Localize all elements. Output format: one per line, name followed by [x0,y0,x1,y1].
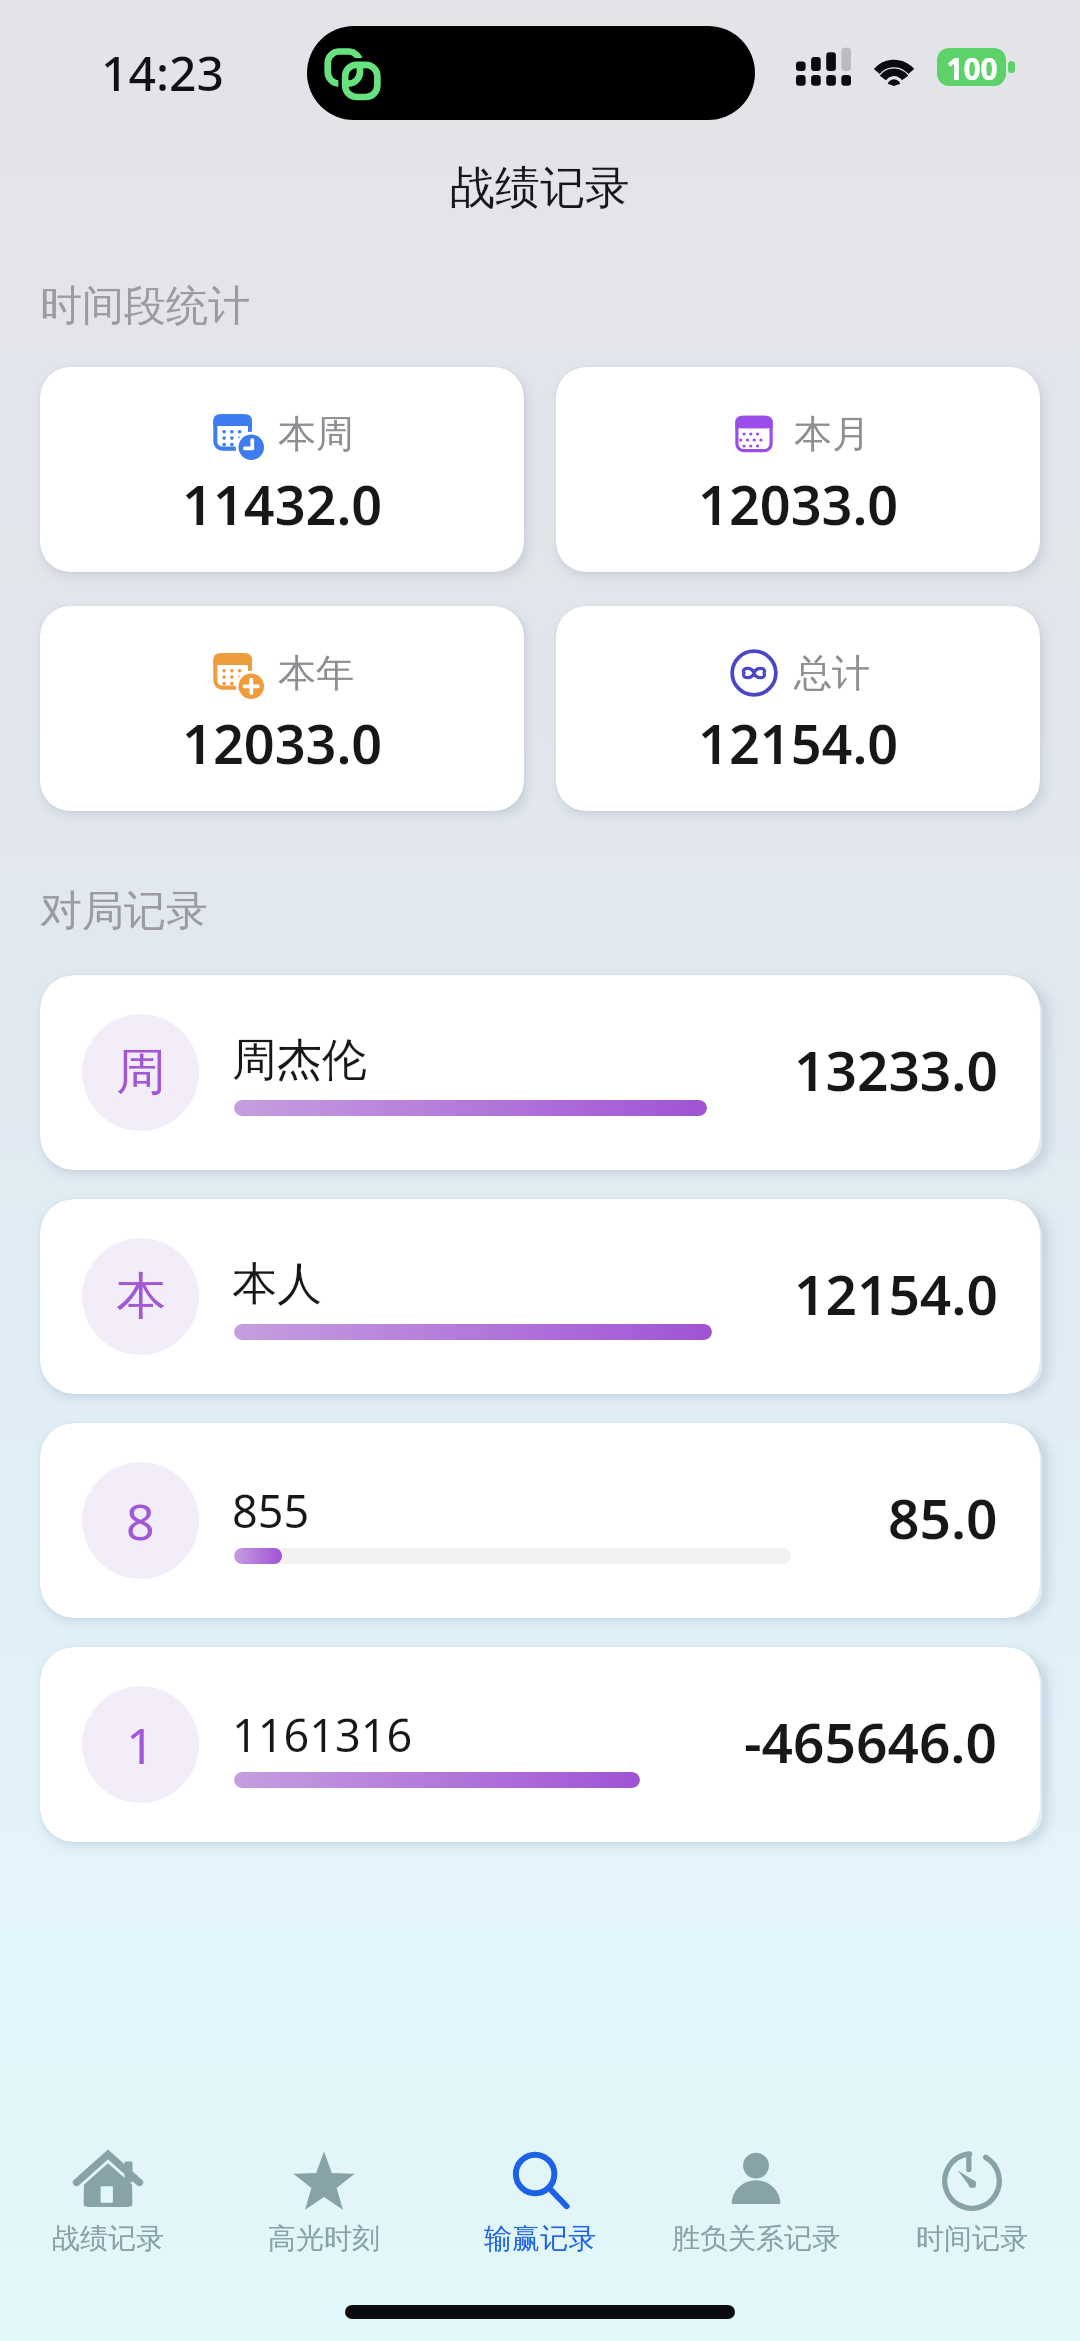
staticText: 12154.0 [794,1256,998,1331]
staticText: 12154.0 [698,706,899,780]
staticText: 高光时刻 [268,2221,380,2256]
staticText: 855 [232,1480,310,1541]
button[interactable]: 胜负关系记录 [648,2146,864,2256]
button[interactable]: 输赢记录 [432,2146,648,2256]
staticText: 8 [126,1487,155,1555]
staticText: 时间段统计 [40,280,250,333]
button[interactable]: 战绩记录 [0,2146,216,2256]
staticText: 1 [126,1711,155,1779]
button[interactable]: 本周 [40,367,524,572]
staticText: 12033.0 [182,706,383,780]
staticText: 本周 [278,410,354,458]
staticText: 战绩记录 [450,160,630,217]
button[interactable]: 本月 [556,367,1040,572]
staticText: 13233.0 [794,1032,998,1107]
staticText: 本 [116,1265,166,1328]
staticText: 胜负关系记录 [672,2221,840,2256]
button[interactable]: 总计 [556,606,1040,811]
staticText: 14:23 [101,40,224,105]
button[interactable]: 本 [40,1199,1040,1394]
staticText: 11432.0 [182,467,383,541]
staticText: 输赢记录 [484,2221,596,2256]
staticText: 总计 [794,649,870,697]
staticText: 本月 [794,410,870,458]
button[interactable]: 时间记录 [864,2146,1080,2256]
button[interactable]: 周 [40,975,1040,1170]
button[interactable]: 8 [40,1423,1040,1618]
button[interactable]: 本年 [40,606,524,811]
staticText: 时间记录 [916,2221,1028,2256]
button[interactable]: 1 [40,1647,1040,1842]
staticText: 1161316 [232,1704,413,1765]
staticText: 100 [946,48,998,86]
staticText: 本人 [232,1256,322,1313]
staticText: -465646.0 [744,1704,998,1779]
staticText: 周 [116,1041,166,1104]
staticText: 对局记录 [40,885,208,938]
staticText: 85.0 [888,1480,998,1555]
button[interactable]: 高光时刻 [216,2146,432,2256]
staticText: 周杰伦 [232,1032,367,1089]
staticText: 战绩记录 [52,2221,164,2256]
staticText: 本年 [278,649,354,697]
staticText: 12033.0 [698,467,899,541]
